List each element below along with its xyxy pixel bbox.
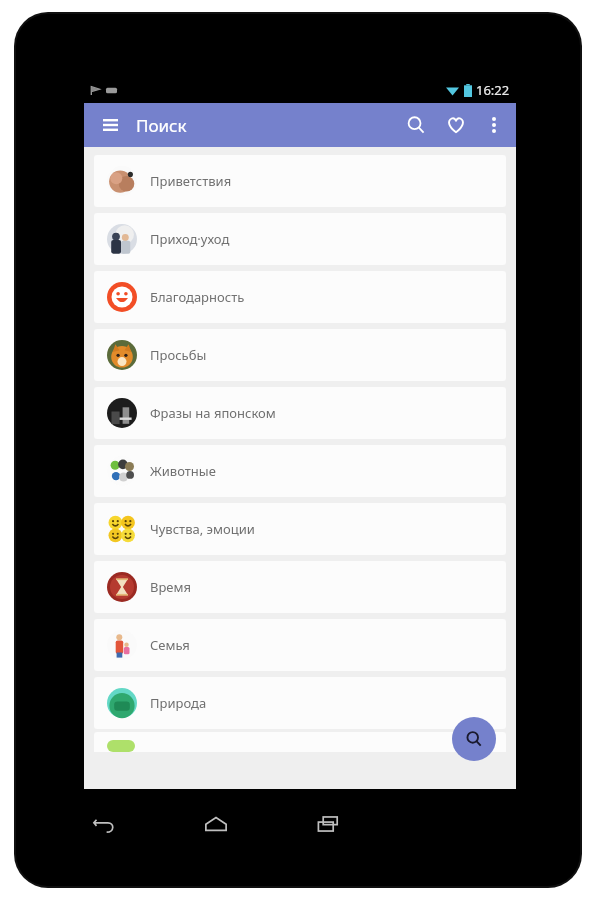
button[interactable]: Семья	[94, 619, 506, 671]
button[interactable]: Животные	[94, 445, 506, 497]
button[interactable]	[94, 732, 506, 752]
staticText: Животные	[150, 462, 216, 480]
button[interactable]: More options	[476, 107, 512, 143]
staticText: Семья	[150, 636, 190, 654]
button[interactable]: Природа	[94, 677, 506, 729]
staticText: Приход·уход	[150, 230, 230, 248]
button[interactable]: Menu	[92, 107, 128, 143]
staticText: Поиск	[136, 114, 187, 137]
staticText: Фразы на японском	[150, 404, 276, 422]
button[interactable]: Приветствия	[94, 155, 506, 207]
button[interactable]: Время	[94, 561, 506, 613]
staticText: 16:22	[476, 81, 510, 99]
button[interactable]: Приход·уход	[94, 213, 506, 265]
staticText: Просьбы	[150, 346, 207, 364]
button[interactable]: Фразы на японском	[94, 387, 506, 439]
staticText: Приветствия	[150, 172, 232, 190]
staticText: Благодарность	[150, 288, 245, 306]
button[interactable]: Recent apps	[300, 799, 356, 849]
staticText: Природа	[150, 694, 207, 712]
button[interactable]: Search	[396, 105, 436, 145]
button[interactable]: Благодарность	[94, 271, 506, 323]
button[interactable]: Home	[188, 799, 244, 849]
button[interactable]: Back	[76, 799, 132, 849]
button[interactable]: Чувства, эмоции	[94, 503, 506, 555]
button[interactable]: Favorites	[436, 105, 476, 145]
staticText: Чувства, эмоции	[150, 520, 255, 538]
button[interactable]: Просьбы	[94, 329, 506, 381]
button[interactable]: Search	[452, 717, 496, 761]
staticText: Время	[150, 578, 192, 596]
